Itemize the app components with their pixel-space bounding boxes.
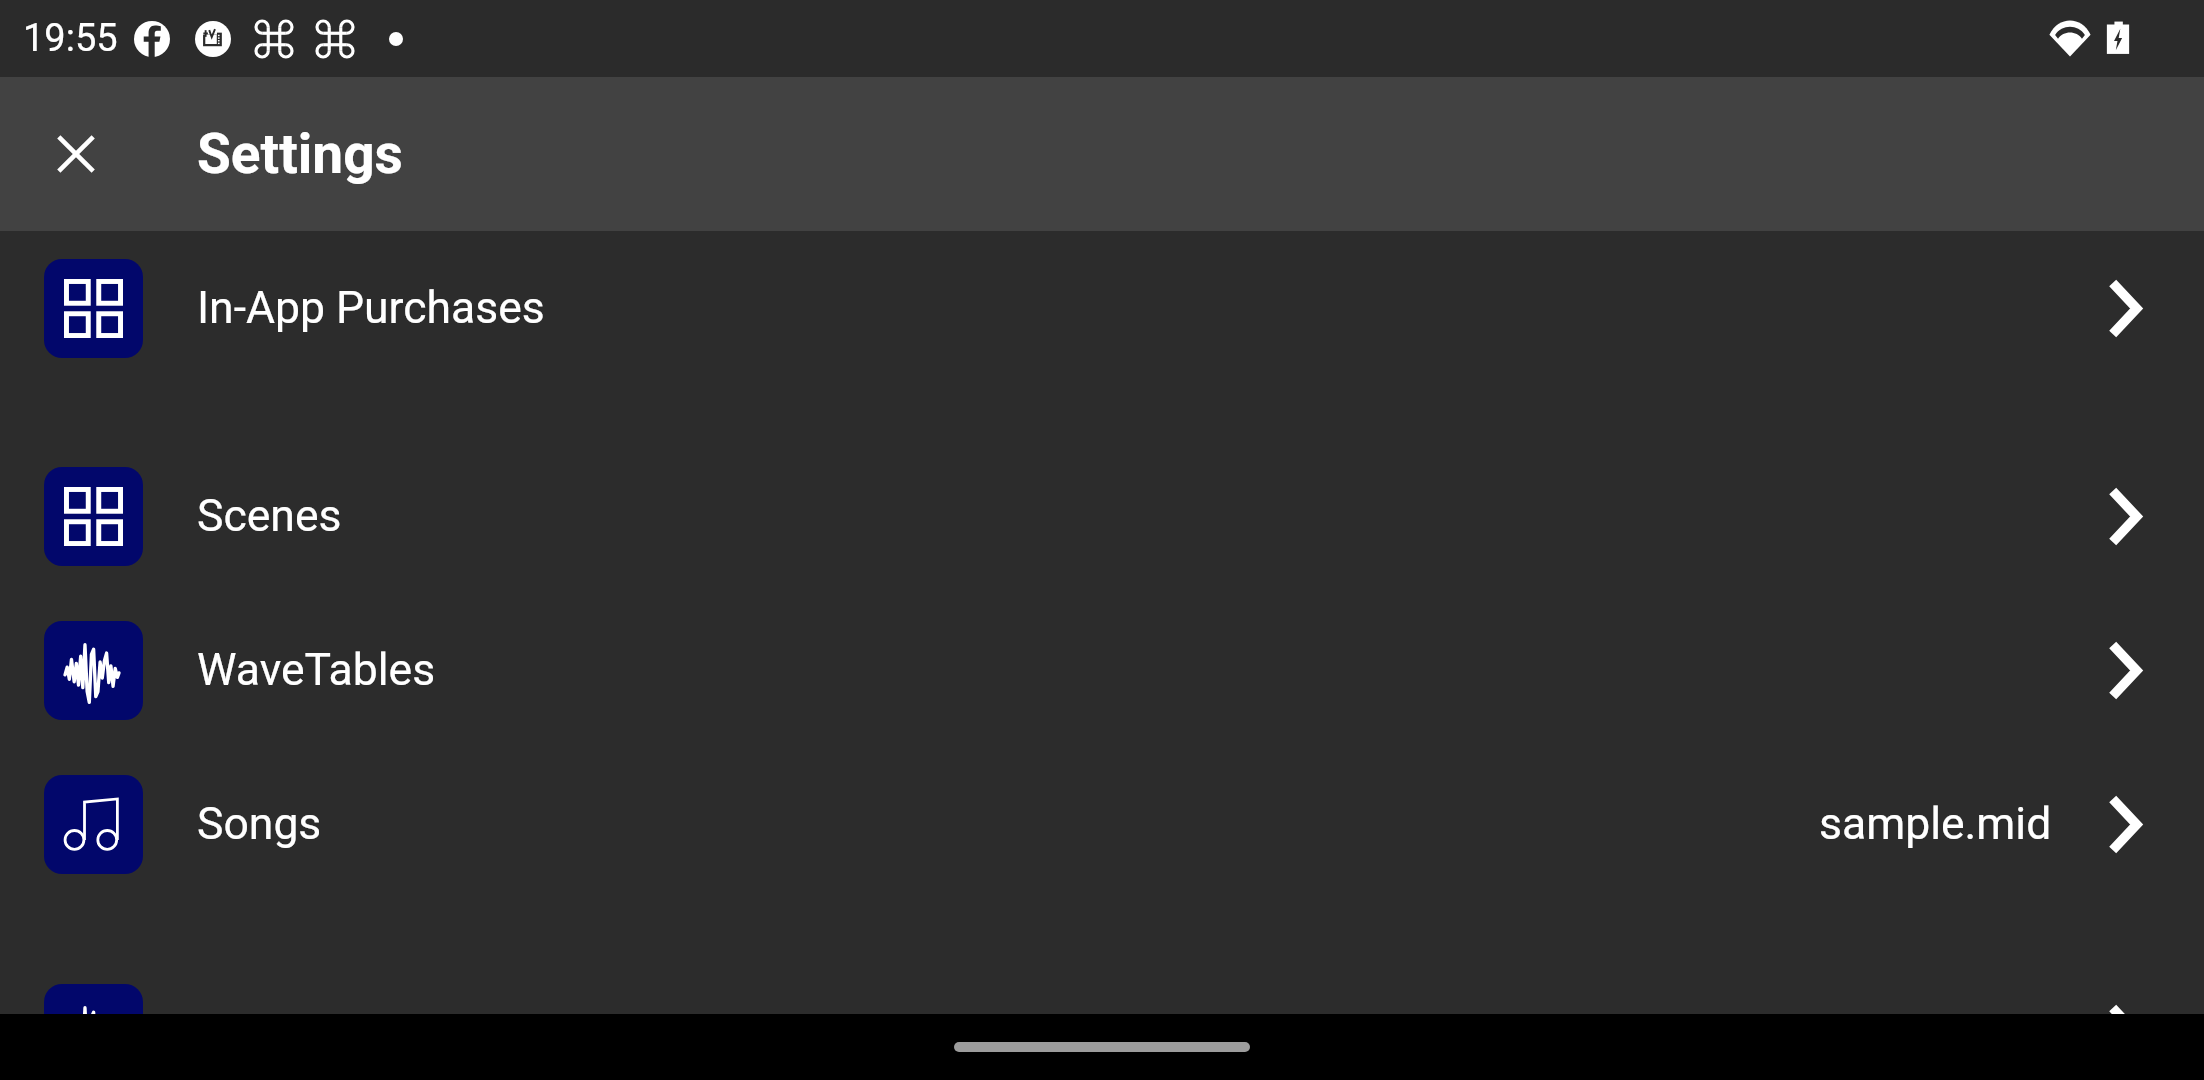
button[interactable]: Songs	[0, 747, 2204, 901]
staticText: WaveTables	[197, 644, 436, 696]
button[interactable]: In-App Purchases	[0, 231, 2204, 385]
staticText: Scenes	[197, 490, 342, 542]
staticText: sample.mid	[1819, 798, 2052, 850]
staticText: In-App Purchases	[197, 282, 545, 334]
staticText: Settings	[197, 122, 403, 186]
button[interactable]: Scenes	[0, 439, 2204, 593]
button[interactable]: Close	[0, 77, 152, 231]
button[interactable]: WaveTables	[0, 593, 2204, 747]
staticText: 19:55	[23, 16, 118, 61]
button[interactable]: Percussion	[0, 956, 2204, 1080]
staticText: Songs	[197, 798, 322, 850]
staticText: Percussion	[197, 1007, 418, 1059]
